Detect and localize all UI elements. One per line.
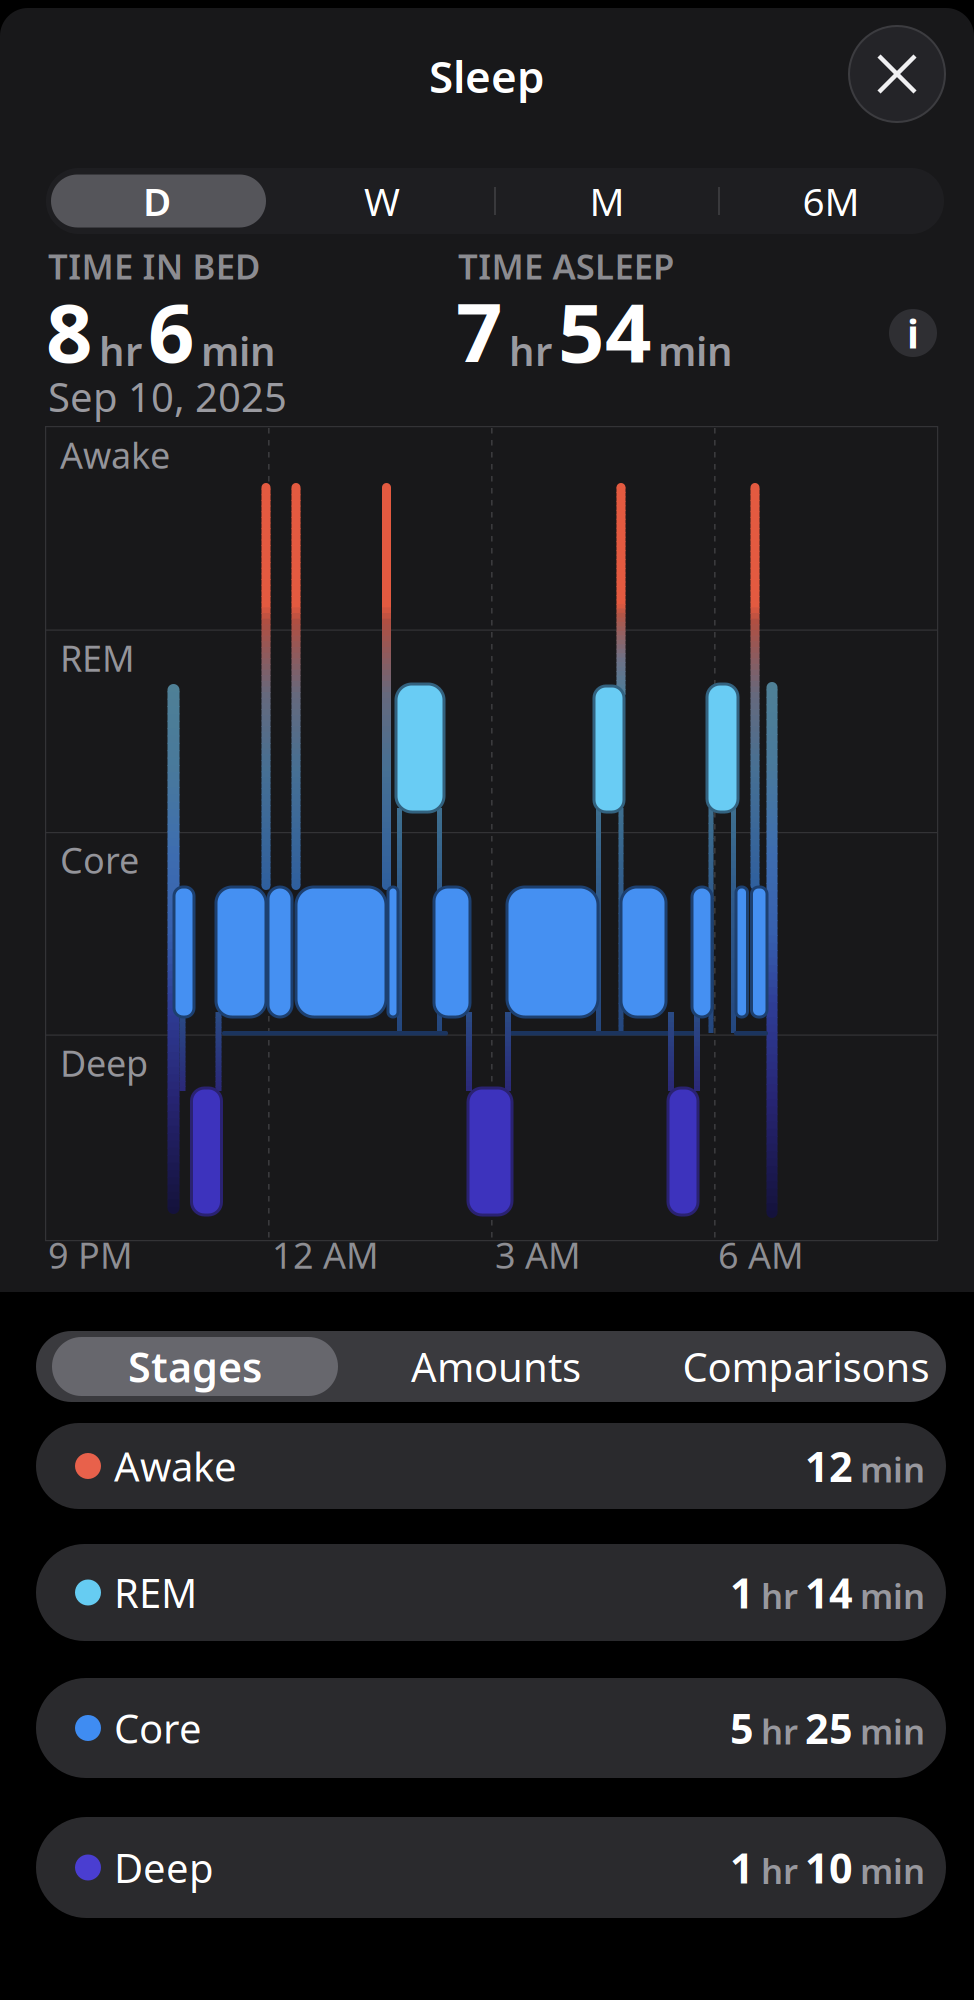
staticText: hr: [761, 1847, 798, 1893]
staticText: Sleep: [429, 47, 545, 105]
staticText: 12 AM: [272, 1231, 379, 1279]
button[interactable]: Comparisons: [656, 1331, 956, 1402]
staticText: TIME IN BED: [48, 243, 260, 289]
staticText: 6 AM: [718, 1231, 804, 1279]
staticText: min: [860, 1572, 925, 1618]
staticText: M: [589, 175, 624, 227]
button[interactable]: D: [45, 168, 269, 234]
staticText: hr: [761, 1708, 798, 1754]
staticText: min: [860, 1708, 925, 1754]
button[interactable]: Amounts: [346, 1331, 646, 1402]
button[interactable]: Close: [849, 26, 945, 122]
staticText: Comparisons: [682, 1340, 929, 1393]
staticText: D: [143, 175, 171, 227]
staticText: 9 PM: [48, 1231, 133, 1279]
button[interactable]: Stages: [45, 1331, 345, 1402]
staticText: 12: [805, 1439, 853, 1493]
staticText: 1: [730, 1840, 754, 1895]
button[interactable]: Awake: [36, 1423, 946, 1509]
staticText: 6: [148, 277, 195, 385]
button[interactable]: More Information: [889, 306, 937, 359]
button[interactable]: 6M: [719, 168, 943, 234]
staticText: 14: [805, 1565, 853, 1620]
staticText: 7: [456, 277, 503, 385]
staticText: Awake: [60, 431, 170, 479]
staticText: Stages: [128, 1339, 262, 1394]
staticText: REM: [60, 634, 135, 682]
button[interactable]: REM: [36, 1544, 946, 1641]
staticText: 6M: [802, 175, 859, 227]
staticText: TIME ASLEEP: [458, 243, 674, 289]
staticText: min: [658, 324, 733, 377]
staticText: 3 AM: [495, 1231, 581, 1279]
staticText: 5: [730, 1701, 754, 1755]
staticText: Core: [60, 836, 139, 884]
staticText: 25: [805, 1701, 853, 1755]
staticText: Deep: [114, 1841, 214, 1894]
staticText: 1: [730, 1565, 754, 1620]
staticText: i: [907, 306, 919, 359]
staticText: Awake: [114, 1439, 237, 1492]
staticText: min: [860, 1847, 925, 1893]
staticText: Sep 10, 2025: [48, 370, 287, 423]
staticText: REM: [114, 1566, 197, 1619]
button[interactable]: Core: [36, 1678, 946, 1778]
staticText: Deep: [60, 1039, 148, 1087]
staticText: min: [201, 324, 276, 377]
staticText: 10: [805, 1840, 853, 1895]
staticText: W: [364, 175, 400, 227]
staticText: hr: [509, 324, 552, 377]
staticText: 8: [46, 277, 93, 385]
staticText: hr: [761, 1572, 798, 1618]
button[interactable]: W: [270, 168, 494, 234]
staticText: Core: [114, 1701, 202, 1754]
button[interactable]: M: [495, 168, 719, 234]
staticText: min: [860, 1446, 925, 1492]
staticText: 54: [558, 277, 652, 385]
staticText: Amounts: [411, 1340, 581, 1393]
button[interactable]: Deep: [36, 1817, 946, 1918]
staticText: hr: [99, 324, 142, 377]
